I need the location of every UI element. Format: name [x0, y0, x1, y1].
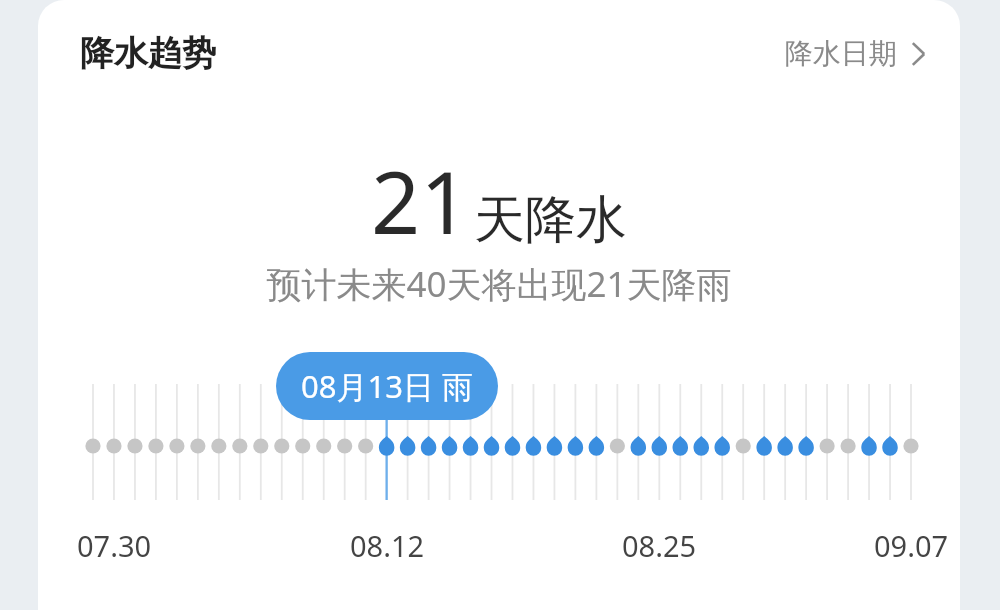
- other: 查看降水日期: [911, 40, 926, 68]
- staticText: 09.07: [874, 526, 949, 565]
- staticText: 降水日期: [785, 36, 897, 71]
- staticText: 降水趋势: [80, 32, 216, 75]
- staticText: 21: [371, 142, 470, 259]
- staticText: 08.25: [622, 526, 697, 565]
- button[interactable]: 08月13日 雨: [276, 352, 498, 420]
- button[interactable]: 08月13日 雨: [38, 350, 960, 520]
- staticText: 08.12: [350, 526, 425, 565]
- button[interactable]: 降水日期: [781, 30, 930, 77]
- staticText: 预计未来40天将出现21天降雨: [266, 260, 732, 308]
- staticText: 07.30: [77, 526, 152, 565]
- staticText: 天降水: [474, 188, 627, 252]
- staticText: 08月13日 雨: [301, 365, 473, 407]
